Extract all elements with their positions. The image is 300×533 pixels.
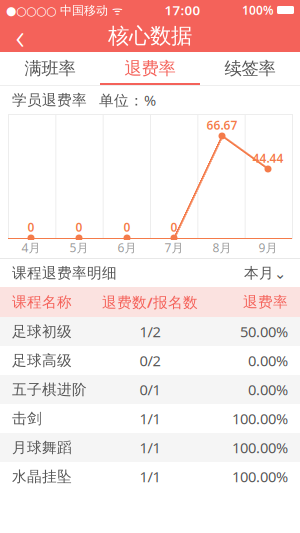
button[interactable]: 月球舞蹈 xyxy=(0,433,300,462)
staticText: 66.67 xyxy=(206,117,237,133)
staticText: 1/1 xyxy=(139,438,160,457)
staticText: 单位：% xyxy=(99,90,156,110)
staticText: 课程名称 xyxy=(12,293,72,311)
staticText: 1/2 xyxy=(139,322,160,341)
button[interactable]: 五子棋进阶 xyxy=(0,375,300,404)
button[interactable]: 本月⌄ xyxy=(242,260,288,286)
staticText: 0/1 xyxy=(139,380,160,399)
staticText: 0.00% xyxy=(248,380,288,399)
staticText: 核心数据 xyxy=(108,23,192,49)
staticText: 月球舞蹈 xyxy=(12,438,72,456)
staticText: 17:00 xyxy=(164,1,200,19)
staticText: 7月 xyxy=(164,239,183,255)
staticText: 50.00% xyxy=(240,322,288,341)
staticText: ●○○○○ 中国移动 ᯤ xyxy=(6,2,123,18)
staticText: 100.00% xyxy=(232,409,288,428)
staticText: 课程退费率明细 xyxy=(12,264,117,282)
staticText: 0 xyxy=(170,219,177,235)
staticText: 1/1 xyxy=(139,467,160,486)
staticText: 6月 xyxy=(117,239,136,255)
button[interactable]: 足球初级 xyxy=(0,317,300,346)
staticText: 退费率 xyxy=(124,58,175,79)
staticText: 足球高级 xyxy=(12,351,72,369)
staticText: 退费率 xyxy=(243,293,288,311)
staticText: 水晶挂坠 xyxy=(12,467,72,485)
staticText: 退费数/报名数 xyxy=(102,292,198,312)
staticText: 5月 xyxy=(69,239,88,255)
staticText: 五子棋进阶 xyxy=(12,380,87,398)
staticText: 本月⌄ xyxy=(244,264,286,282)
staticText: 学员退费率 xyxy=(12,91,87,109)
button[interactable]: 返回 xyxy=(0,20,40,52)
staticText: 9月 xyxy=(258,239,277,255)
button[interactable]: 击剑 xyxy=(0,404,300,433)
staticText: 0 xyxy=(123,219,130,235)
staticText: 足球初级 xyxy=(12,322,72,340)
staticText: 0.00% xyxy=(248,351,288,370)
staticText: 0 xyxy=(27,219,34,235)
staticText: 100% xyxy=(242,2,274,18)
staticText: 0 xyxy=(75,219,82,235)
staticText: 100.00% xyxy=(232,467,288,486)
button[interactable]: 足球高级 xyxy=(0,346,300,375)
button[interactable]: 满班率 xyxy=(0,52,100,85)
staticText: 1/1 xyxy=(139,409,160,428)
staticText: 满班率 xyxy=(24,58,75,79)
staticText: 击剑 xyxy=(12,409,42,427)
staticText: 4月 xyxy=(21,239,40,255)
staticText: 100.00% xyxy=(232,438,288,457)
staticText: ‹ xyxy=(15,13,24,59)
staticText: 44.44 xyxy=(252,150,283,166)
staticText: 8月 xyxy=(212,239,231,255)
button[interactable]: 续签率 xyxy=(200,52,300,85)
staticText: 续签率 xyxy=(224,58,275,79)
button[interactable]: 退费率 xyxy=(100,52,200,85)
staticText: 0/2 xyxy=(139,351,160,370)
button[interactable]: 水晶挂坠 xyxy=(0,462,300,491)
